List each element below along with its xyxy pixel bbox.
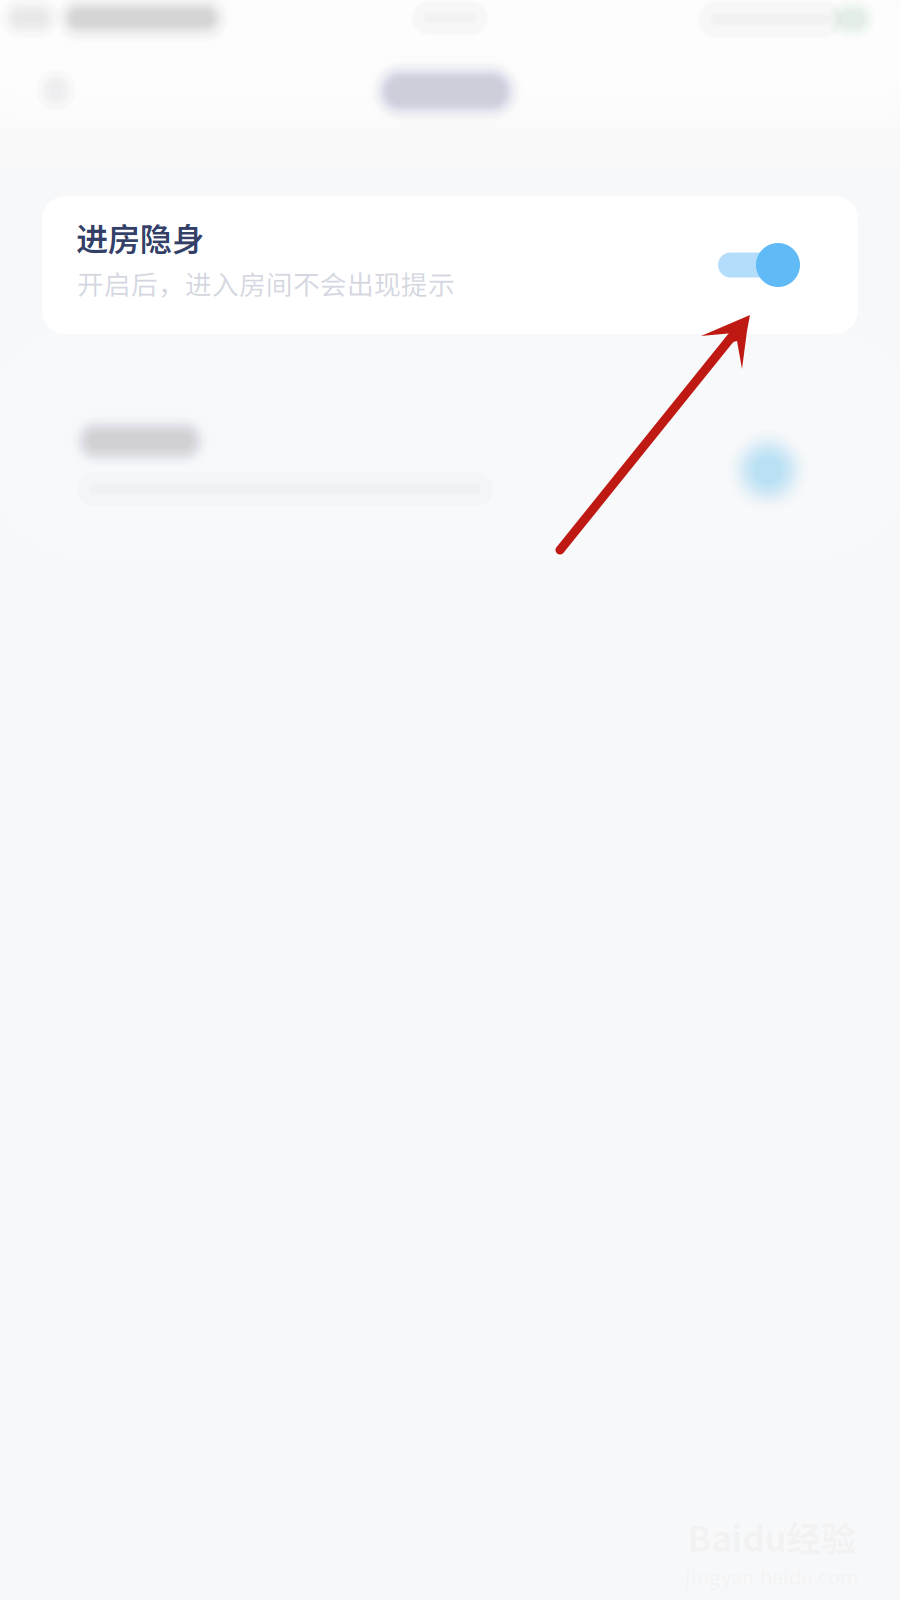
staticText: 进房隐身	[76, 214, 204, 260]
button[interactable]: 进房隐身	[42, 196, 858, 334]
staticText: 开启后，进入房间不会出现提示	[77, 264, 455, 302]
